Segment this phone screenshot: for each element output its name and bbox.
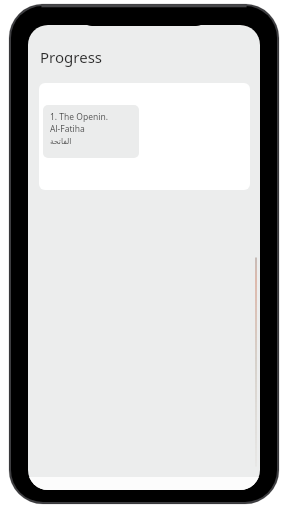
staticText: Progress (40, 47, 102, 67)
button[interactable]: 1. The Openin. (39, 83, 250, 190)
staticText: الفاتحة (50, 137, 72, 146)
staticText: Al-Fatiha (50, 123, 85, 135)
button[interactable]: 1. The Openin. (43, 105, 139, 158)
staticText: 1. The Openin. (50, 111, 108, 123)
